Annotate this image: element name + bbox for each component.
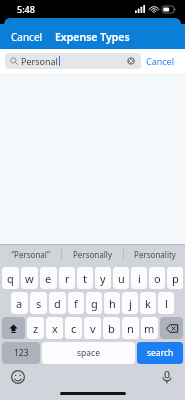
staticText: Personality [134,249,176,260]
button[interactable]: x [46,317,63,339]
staticText: m [144,321,155,336]
staticText: w [25,271,34,286]
button[interactable]: w [21,267,38,289]
button[interactable]: n [122,317,139,339]
button[interactable]: Backspace [160,317,183,339]
button[interactable]: h [104,292,120,314]
staticText: y [100,271,106,286]
staticText: Cancel [146,55,175,67]
button[interactable]: l [158,292,174,314]
staticText: Cancel [11,30,43,44]
staticText: b [108,321,115,336]
button[interactable]: j [122,292,138,314]
button[interactable]: k [140,292,156,314]
staticText: p [172,271,179,286]
staticText: u [118,271,125,286]
button[interactable]: y [95,267,111,289]
staticText: v [90,321,96,336]
button[interactable]: p [167,267,183,289]
button[interactable]: m [141,317,158,339]
button[interactable]: 123 [2,342,40,364]
staticText: d [54,296,61,311]
button[interactable]: o [149,267,165,289]
staticText: space [77,347,100,359]
staticText: x [52,321,58,336]
button[interactable]: q [2,267,19,289]
button[interactable]: t [77,267,93,289]
button[interactable]: Cancel [141,51,180,71]
button[interactable]: g [86,292,102,314]
button[interactable]: Personal [5,53,141,69]
staticText: t [83,271,87,286]
button[interactable]: Emoji [10,369,26,385]
button[interactable]: space [42,342,135,364]
staticText: a [16,296,23,311]
button[interactable]: i [131,267,147,289]
button[interactable]: b [103,317,120,339]
staticText: f [74,296,78,311]
button[interactable]: u [113,267,129,289]
staticText: i [138,271,141,286]
staticText: “Personal” [11,249,50,260]
button[interactable]: Dictation [159,369,175,385]
button[interactable]: s [30,292,47,314]
button[interactable]: Shift [2,317,25,339]
staticText: r [65,271,70,286]
staticText: Expense Types [55,30,130,44]
staticText: j [129,296,132,311]
staticText: l [165,296,168,311]
staticText: e [45,271,52,286]
button[interactable]: search [137,342,183,364]
staticText: search [147,347,174,359]
button[interactable]: Clear text [126,56,136,66]
button[interactable]: “Personal” [0,244,61,265]
button[interactable]: c [65,317,82,339]
button[interactable]: r [59,267,75,289]
staticText: Personal [21,55,58,67]
button[interactable]: Personally [62,244,123,265]
button[interactable]: v [84,317,101,339]
staticText: 5:48 [17,3,35,15]
staticText: 123 [14,347,29,359]
staticText: n [127,321,134,336]
button[interactable]: f [68,292,84,314]
staticText: s [36,296,42,311]
staticText: z [33,321,39,336]
button[interactable]: Personality [124,244,185,265]
button[interactable]: a [11,292,28,314]
staticText: o [154,271,161,286]
staticText: h [109,296,116,311]
staticText: q [7,271,14,286]
button[interactable]: e [40,267,57,289]
button[interactable]: z [27,317,44,339]
staticText: c [71,321,77,336]
staticText: g [91,296,98,311]
staticText: k [145,296,151,311]
button[interactable]: d [49,292,66,314]
button[interactable]: Cancel [0,25,54,49]
staticText: Personally [73,249,112,260]
